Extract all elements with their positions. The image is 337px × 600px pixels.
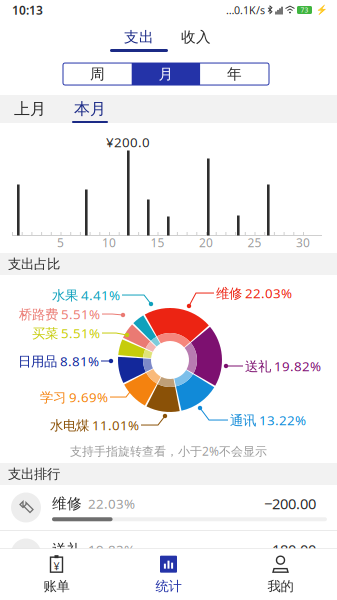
staticText: 维修 22.03% xyxy=(216,284,292,302)
staticText: 水电煤 11.01% xyxy=(50,416,139,434)
staticText: 20 xyxy=(199,234,213,250)
button[interactable]: 支出 xyxy=(110,28,168,52)
button[interactable]: ¥ xyxy=(0,549,112,600)
staticText: 5 xyxy=(57,234,64,250)
staticText: 学习 9.69% xyxy=(40,388,108,406)
button[interactable]: 本月 xyxy=(68,101,112,123)
staticText: 25 xyxy=(247,234,261,250)
button[interactable]: 统计 xyxy=(112,549,224,600)
staticText: ⚡ xyxy=(316,5,328,15)
staticText: ¥200.0 xyxy=(106,133,150,151)
staticText: 支出排行 xyxy=(8,466,60,482)
staticText: 日用品 8.81% xyxy=(18,352,99,370)
staticText: −200.00 xyxy=(264,494,316,513)
button[interactable]: 年 xyxy=(200,63,269,85)
staticText: 30 xyxy=(296,234,310,250)
staticText: 周 xyxy=(90,65,105,83)
staticText: 我的 xyxy=(267,578,293,595)
staticText: 支持手指旋转查看，小于2%不会显示 xyxy=(70,443,267,459)
staticText: 22.03% xyxy=(82,495,135,512)
button[interactable]: 收入 xyxy=(167,28,225,52)
staticText: 73 xyxy=(300,6,308,14)
staticText: 本月 xyxy=(74,99,106,119)
staticText: 统计 xyxy=(155,578,181,595)
staticText: 维修 xyxy=(52,494,82,512)
staticText: 上月 xyxy=(14,99,46,119)
staticText: 支出 xyxy=(124,28,154,46)
staticText: 15 xyxy=(150,234,164,250)
button[interactable]: 送礼 xyxy=(0,531,337,577)
button[interactable]: 我的 xyxy=(224,549,336,600)
staticText: 收入 xyxy=(181,28,211,46)
staticText: 19.82% xyxy=(82,541,135,558)
staticText: 账单 xyxy=(43,578,69,595)
staticText: 10:13 xyxy=(12,2,43,18)
staticText: 10 xyxy=(102,234,116,250)
button[interactable]: 月 xyxy=(132,63,200,85)
staticText: 送礼 xyxy=(52,540,82,558)
staticText: 月 xyxy=(158,65,173,83)
button[interactable]: 维修 xyxy=(0,485,337,531)
staticText: 水果 4.41% xyxy=(52,286,120,304)
staticText: 桥路费 5.51% xyxy=(19,305,100,323)
staticText: 支出占比 xyxy=(8,256,60,272)
staticText: 年 xyxy=(227,65,242,83)
staticText: −180.00 xyxy=(264,540,316,559)
button[interactable]: 周 xyxy=(63,63,132,85)
staticText: …0.1K/s xyxy=(226,3,265,17)
staticText: 通讯 13.22% xyxy=(230,411,306,429)
staticText: 买菜 5.51% xyxy=(32,324,100,342)
staticText: 送礼 19.82% xyxy=(245,357,321,375)
staticText: ¥ xyxy=(53,559,59,573)
button[interactable]: 上月 xyxy=(8,101,52,117)
